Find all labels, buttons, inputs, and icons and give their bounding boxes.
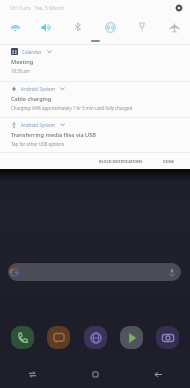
staticText: Android System — [21, 86, 55, 92]
button[interactable]: Android System — [0, 81, 190, 117]
button[interactable]: Recents — [0, 360, 64, 388]
button[interactable]: Settings — [171, 0, 186, 15]
button[interactable]: DONE — [161, 156, 176, 167]
button[interactable]: Back — [127, 360, 190, 388]
button[interactable]: Sound — [31, 16, 62, 38]
staticText: 10:30 am — [11, 68, 30, 74]
button[interactable]: Wi-Fi — [0, 16, 31, 38]
staticText: BLOCK NOTIFICATIONS — [99, 159, 143, 164]
button[interactable]: Calendar — [0, 44, 190, 81]
button[interactable]: Mobile hotspot — [94, 16, 126, 38]
button[interactable]: Play Store — [120, 326, 143, 349]
button[interactable]: BLOCK NOTIFICATIONS — [97, 156, 145, 167]
staticText: Charging: 64% approximately 1 hr 5 min u… — [11, 105, 133, 111]
button[interactable]: Messages — [47, 326, 70, 349]
staticText: Meeting — [11, 58, 34, 66]
button[interactable]: Internet — [84, 326, 107, 349]
staticText: Cable charging — [11, 95, 52, 103]
staticText: Transferring media files via USB — [11, 131, 96, 139]
button[interactable]: Flashlight — [126, 16, 158, 38]
staticText: Tue, 5 March — [34, 5, 65, 12]
button[interactable]: Camera — [156, 326, 179, 349]
button[interactable]: Bluetooth — [62, 16, 94, 38]
staticText: Tap for other USB options — [11, 141, 65, 147]
button[interactable]: Android System — [0, 117, 190, 152]
staticText: 10:13 am — [9, 5, 31, 12]
staticText: Android System — [21, 122, 55, 128]
button[interactable] — [8, 263, 181, 281]
button[interactable]: Home — [64, 360, 127, 388]
button[interactable]: Phone — [11, 326, 34, 349]
button[interactable]: Flight mode — [158, 16, 190, 38]
staticText: Calendar — [22, 49, 42, 55]
staticText: DONE — [163, 159, 174, 164]
